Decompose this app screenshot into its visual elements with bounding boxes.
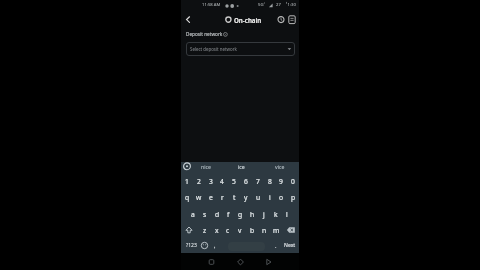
button[interactable]: o xyxy=(275,190,287,205)
staticText: t xyxy=(233,193,236,202)
button[interactable]: j xyxy=(258,207,270,222)
staticText: vice xyxy=(275,163,285,170)
button[interactable]: 5 xyxy=(228,174,240,189)
button[interactable]: 2 xyxy=(193,174,205,189)
staticText: f xyxy=(227,210,230,219)
staticText: h xyxy=(250,210,255,219)
staticText: ice xyxy=(238,163,245,170)
staticText: On-chain xyxy=(234,16,262,24)
button[interactable] xyxy=(200,241,209,250)
button[interactable] xyxy=(287,14,297,25)
button[interactable]: t xyxy=(228,190,240,205)
staticText: k xyxy=(274,210,278,219)
button[interactable]: s xyxy=(199,207,211,222)
staticText: l xyxy=(286,210,288,219)
button[interactable] xyxy=(234,256,247,268)
button[interactable]: 0 xyxy=(287,174,299,189)
button[interactable] xyxy=(182,161,192,172)
button[interactable]: ?123 xyxy=(183,239,199,252)
button[interactable]: e xyxy=(205,190,217,205)
button[interactable]: nice xyxy=(195,161,217,172)
button[interactable]: a xyxy=(187,207,199,222)
staticText: . xyxy=(275,242,277,249)
staticText: nice xyxy=(201,163,211,170)
staticText: 5 xyxy=(232,177,236,186)
button[interactable] xyxy=(182,13,194,26)
button[interactable]: i xyxy=(264,190,276,205)
button[interactable]: . xyxy=(272,239,280,252)
button[interactable]: vice xyxy=(269,161,291,172)
button[interactable]: 4 xyxy=(216,174,228,189)
staticText: m xyxy=(273,226,280,235)
staticText: d xyxy=(215,210,220,219)
button[interactable]: 3 xyxy=(205,174,217,189)
staticText: g xyxy=(238,210,243,219)
staticText: o xyxy=(279,193,284,202)
button[interactable]: c xyxy=(222,223,234,238)
staticText: 4 xyxy=(220,177,224,186)
staticText: y xyxy=(244,193,248,202)
button[interactable]: f xyxy=(222,207,234,222)
button[interactable]: 1 xyxy=(181,174,193,189)
button[interactable]: On-chain xyxy=(223,13,263,26)
staticText: p xyxy=(291,193,296,202)
button[interactable]: 7 xyxy=(252,174,264,189)
button[interactable] xyxy=(183,224,195,236)
button[interactable]: l xyxy=(281,207,293,222)
staticText: b xyxy=(250,226,255,235)
button[interactable]: 8 xyxy=(264,174,276,189)
staticText: ?123 xyxy=(186,242,197,249)
button[interactable]: r xyxy=(216,190,228,205)
button[interactable]: d xyxy=(211,207,223,222)
button[interactable]: q xyxy=(181,190,193,205)
button[interactable]: h xyxy=(246,207,258,222)
button[interactable] xyxy=(205,256,218,268)
button[interactable] xyxy=(285,224,297,236)
staticText: 9 xyxy=(279,177,283,186)
staticText: z xyxy=(203,226,207,235)
staticText: 3 xyxy=(209,177,213,186)
button[interactable]: g xyxy=(234,207,246,222)
button[interactable]: z xyxy=(199,223,211,238)
button[interactable]: w xyxy=(193,190,205,205)
staticText: ¹1:30 xyxy=(286,2,296,8)
button[interactable]: ice xyxy=(230,161,252,172)
staticText: Deposit network xyxy=(186,31,223,37)
staticText: 6 xyxy=(244,177,248,186)
staticText: 11:58 AM xyxy=(202,2,221,8)
button[interactable]: y xyxy=(240,190,252,205)
staticText: x xyxy=(215,226,219,235)
staticText: e xyxy=(209,193,213,202)
staticText: Next xyxy=(284,242,296,249)
staticText: v xyxy=(238,226,242,235)
staticText: 27 xyxy=(276,2,281,8)
staticText: w xyxy=(196,193,202,202)
button[interactable]: b xyxy=(246,223,258,238)
button[interactable]: v xyxy=(234,223,246,238)
staticText: c xyxy=(226,226,230,235)
button[interactable]: p xyxy=(287,190,299,205)
button[interactable] xyxy=(262,256,275,268)
button[interactable]: m xyxy=(270,223,282,238)
button[interactable] xyxy=(276,14,286,25)
button[interactable]: Next xyxy=(281,239,299,252)
staticText: r xyxy=(221,193,224,202)
staticText: 5G⁺ xyxy=(258,2,265,8)
staticText: s xyxy=(203,210,207,219)
staticText: 8 xyxy=(268,177,272,186)
staticText: j xyxy=(263,210,265,219)
button[interactable]: x xyxy=(211,223,223,238)
staticText: q xyxy=(185,193,190,202)
staticText: 1 xyxy=(185,177,189,186)
button[interactable]: u xyxy=(252,190,264,205)
button[interactable]: n xyxy=(258,223,270,238)
button[interactable]: Select deposit network xyxy=(186,42,295,56)
staticText: 2 xyxy=(197,177,201,186)
button[interactable]: , xyxy=(211,239,219,252)
button[interactable]: 9 xyxy=(275,174,287,189)
button[interactable]: k xyxy=(270,207,282,222)
staticText: a xyxy=(191,210,195,219)
staticText: u xyxy=(256,193,261,202)
button[interactable]: 6 xyxy=(240,174,252,189)
